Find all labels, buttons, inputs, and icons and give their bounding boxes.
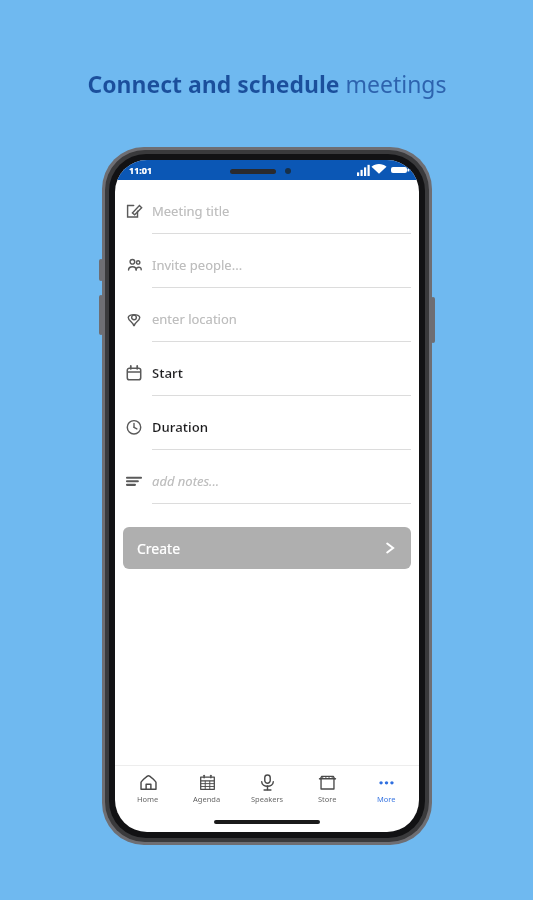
staticText: Speakers [251, 794, 284, 804]
staticText: Start [152, 364, 183, 382]
staticText: enter location [152, 310, 237, 328]
staticText: Connect and schedule meetings [87, 68, 447, 99]
staticText: 11:01 [129, 164, 153, 176]
staticText: Duration [152, 418, 209, 436]
button[interactable]: Create [123, 527, 411, 569]
staticText: More [377, 794, 396, 804]
button[interactable]: Meeting title [115, 189, 419, 243]
button[interactable]: Speakers [240, 766, 294, 812]
button[interactable]: More [359, 766, 413, 812]
staticText: Create [137, 539, 181, 558]
button[interactable]: Agenda [180, 766, 234, 812]
button[interactable]: Duration [115, 405, 419, 459]
staticText: Invite people... [152, 256, 243, 274]
button[interactable]: Start [115, 351, 419, 405]
staticText: add notes... [152, 472, 220, 490]
staticText: Home [137, 794, 159, 804]
button[interactable]: Home [121, 766, 175, 812]
button[interactable]: Store [300, 766, 354, 812]
button[interactable]: Invite people... [115, 243, 419, 297]
button[interactable]: add notes... [115, 459, 419, 513]
staticText: Agenda [193, 794, 221, 804]
staticText: Store [318, 794, 337, 804]
staticText: Meeting title [152, 202, 230, 220]
button[interactable]: enter location [115, 297, 419, 351]
